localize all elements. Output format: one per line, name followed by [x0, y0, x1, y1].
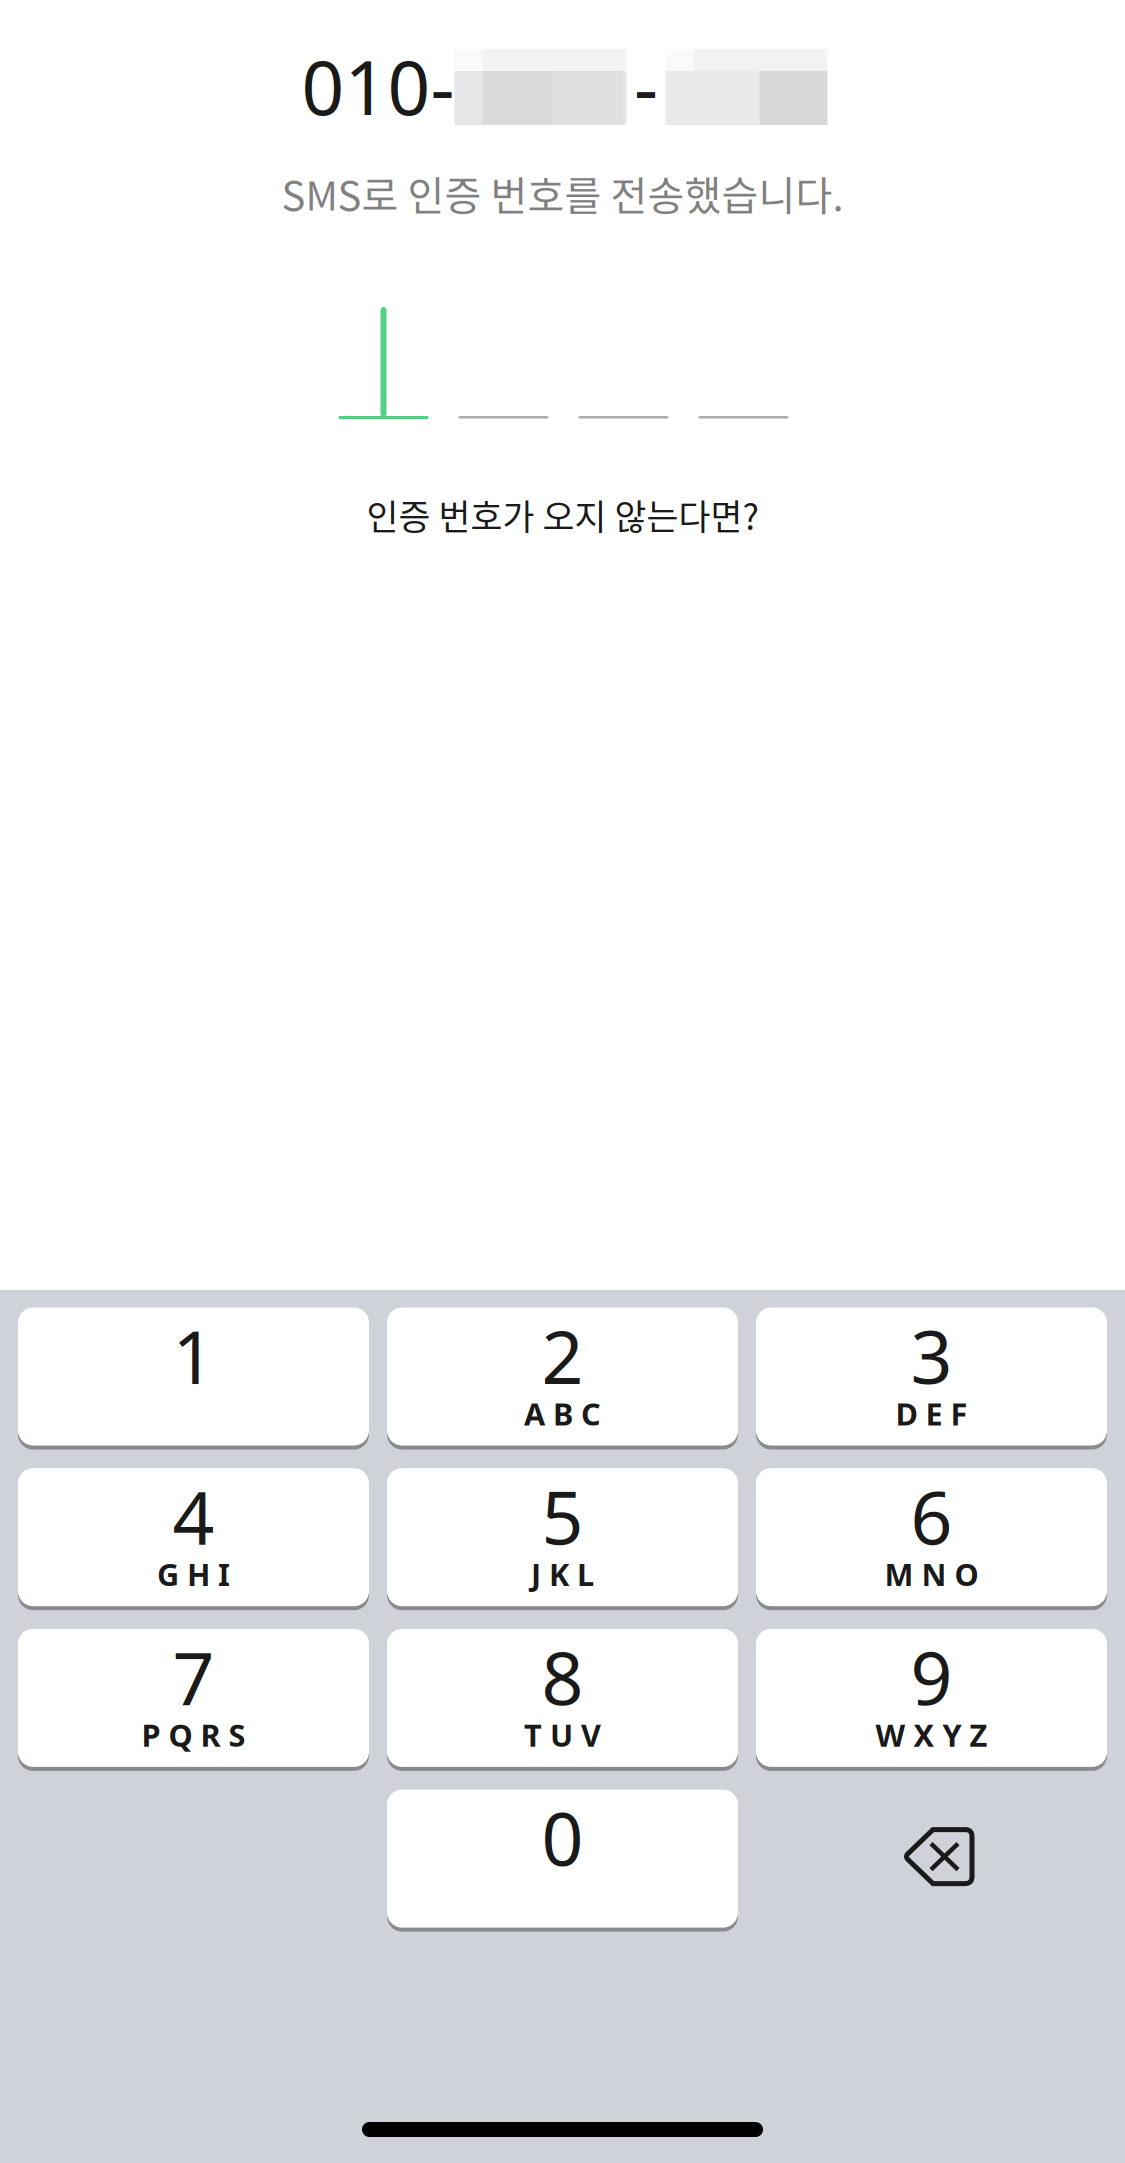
staticText: 1 [172, 1307, 214, 1404]
staticText: D E F [895, 1393, 967, 1434]
staticText: T U V [524, 1714, 601, 1755]
staticText: A B C [524, 1393, 601, 1434]
staticText: 6 [910, 1467, 952, 1565]
button[interactable]: 0 [387, 1790, 738, 1933]
button[interactable]: 3 [756, 1307, 1107, 1450]
staticText: 2 [541, 1307, 583, 1404]
staticText: 010- [301, 36, 454, 136]
button[interactable]: 7 [18, 1629, 369, 1772]
button[interactable]: 2 [387, 1307, 738, 1450]
button[interactable]: 8 [387, 1629, 738, 1772]
staticText: 9 [910, 1628, 952, 1726]
button[interactable]: 4 [18, 1468, 369, 1611]
staticText: - [634, 36, 658, 136]
button[interactable]: 5 [387, 1468, 738, 1611]
staticText: J K L [531, 1554, 594, 1594]
staticText: 4 [172, 1467, 214, 1565]
button[interactable]: 인증 번호가 오지 않는다면? [327, 476, 797, 554]
staticText: 5 [541, 1467, 583, 1565]
staticText: W X Y Z [875, 1714, 987, 1755]
staticText: 3 [910, 1307, 952, 1404]
button[interactable]: 1 [18, 1307, 369, 1450]
staticText: 인증 번호가 오지 않는다면? [366, 490, 758, 540]
button[interactable]: 9 [756, 1629, 1107, 1772]
button[interactable]: 6 [756, 1468, 1107, 1611]
staticText: 7 [172, 1628, 214, 1726]
staticText: 0 [541, 1789, 583, 1886]
staticText: M N O [884, 1554, 978, 1594]
staticText: G H I [157, 1554, 230, 1594]
staticText: 8 [541, 1628, 583, 1726]
staticText: SMS로 인증 번호를 전송했습니다. [281, 164, 843, 222]
button[interactable]: Delete [756, 1790, 1107, 1928]
staticText: P Q R S [141, 1714, 245, 1755]
